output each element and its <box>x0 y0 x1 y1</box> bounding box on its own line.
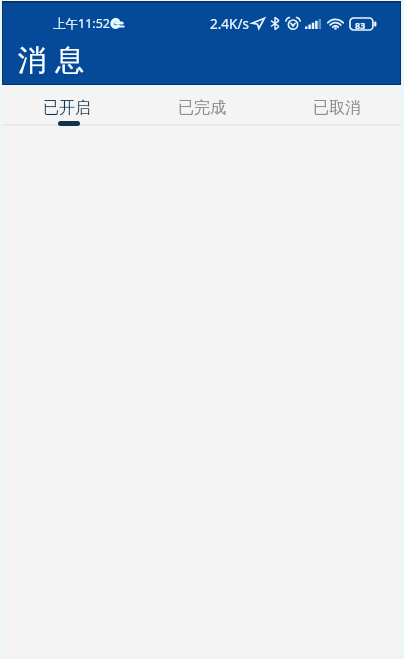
staticText: 2.4K/s <box>210 15 249 33</box>
button[interactable]: 已开启 <box>0 87 134 124</box>
other: Bluetooth <box>270 17 280 30</box>
other: Battery 83 percent <box>350 18 376 30</box>
staticText: 已取消 <box>313 98 361 118</box>
other: Wi-Fi <box>327 19 344 30</box>
other: Mobile signal <box>305 19 321 29</box>
button[interactable]: 已取消 <box>269 87 404 124</box>
staticText: 83 <box>355 19 366 31</box>
staticText: 上午11:52 <box>53 15 110 32</box>
other: Location <box>251 17 265 29</box>
button[interactable]: 已完成 <box>134 87 269 124</box>
other: Alarm <box>285 17 301 30</box>
other: Browser <box>111 18 124 29</box>
staticText: 消息 <box>18 42 94 79</box>
staticText: 已开启 <box>43 98 91 118</box>
staticText: 已完成 <box>178 98 226 118</box>
